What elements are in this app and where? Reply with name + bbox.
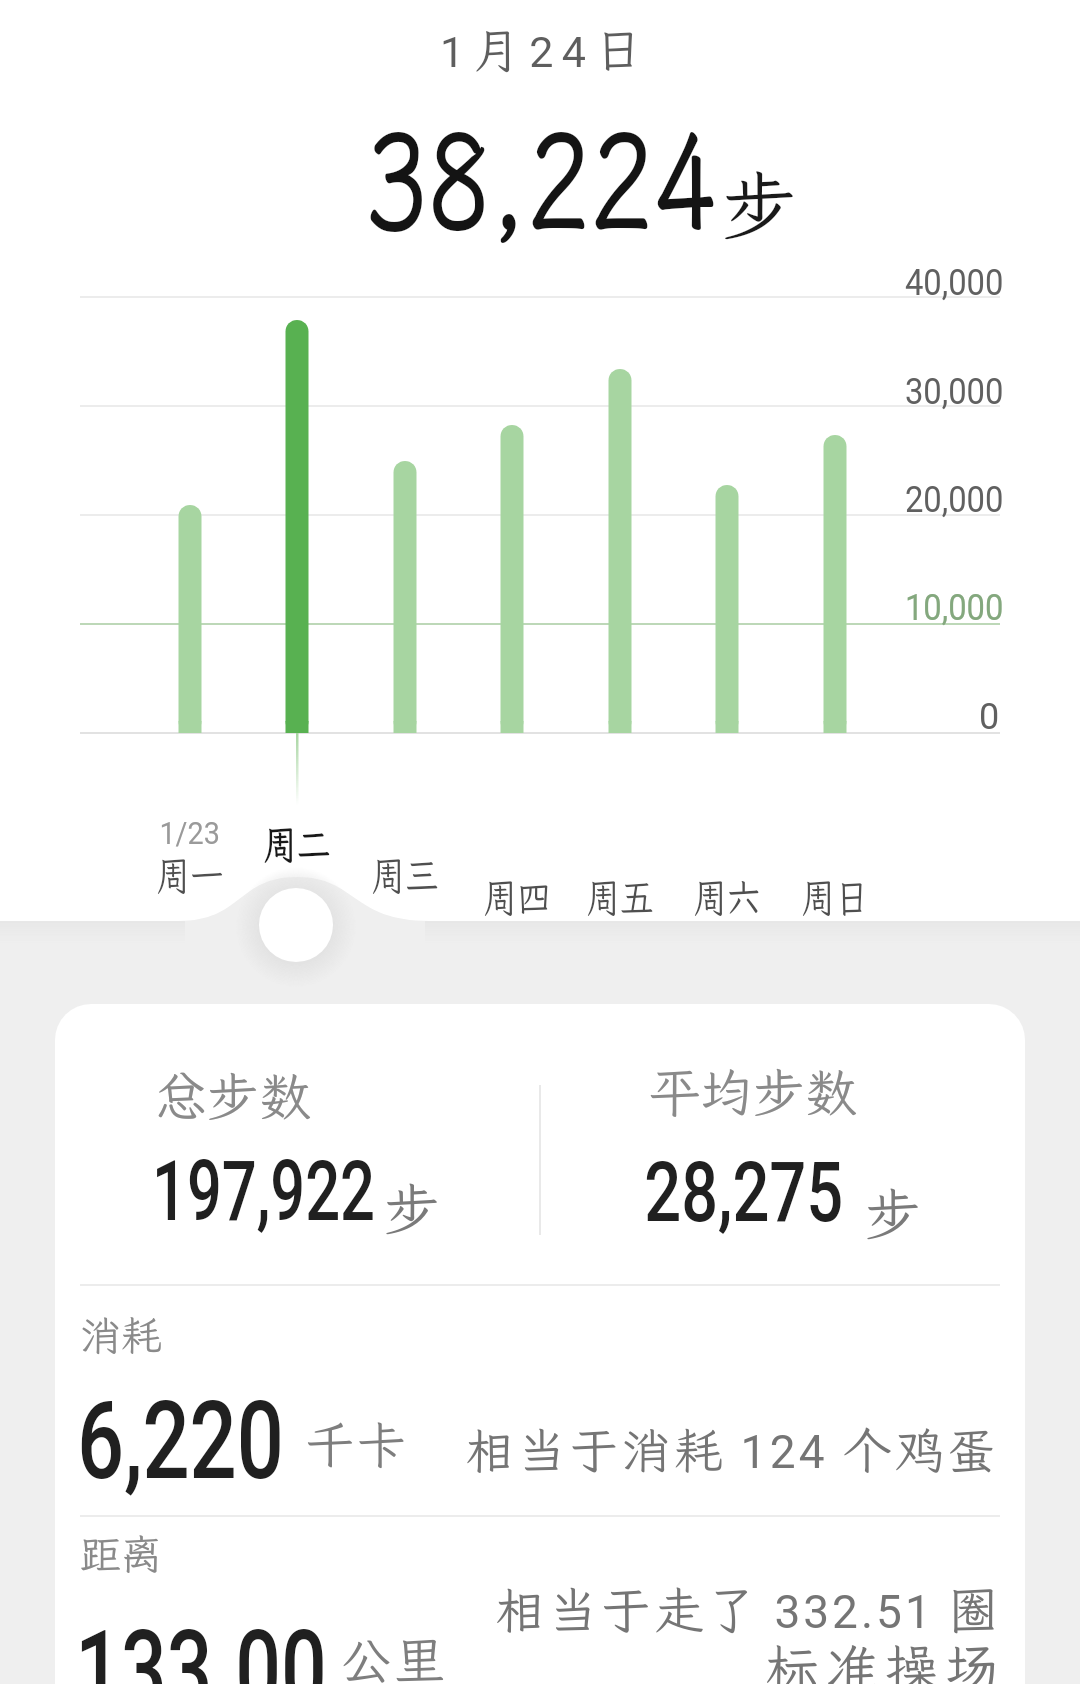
staticText: 38,224 xyxy=(365,90,716,266)
staticText: 相当于消耗 124 个鸡蛋 xyxy=(465,1417,999,1482)
staticText: 公里 xyxy=(340,1625,448,1684)
staticText: 步 xyxy=(384,1171,440,1245)
staticText: 133.00 xyxy=(75,1608,327,1684)
staticText: 10,000 xyxy=(905,587,1004,629)
staticText: 距离 xyxy=(80,1527,162,1581)
staticText: 20,000 xyxy=(905,479,1004,521)
button[interactable] xyxy=(136,297,243,917)
staticText: 周三 xyxy=(371,849,439,902)
staticText: 0 xyxy=(979,696,1000,738)
staticText: 1月24日 xyxy=(440,17,651,80)
button[interactable] xyxy=(671,297,778,917)
staticText: 千卡 xyxy=(305,1411,408,1477)
button[interactable] xyxy=(564,297,671,917)
staticText: 周二 xyxy=(263,818,331,871)
staticText: 平均步数 xyxy=(649,1057,858,1125)
button[interactable] xyxy=(243,297,350,917)
staticText: 周一 xyxy=(156,849,224,902)
staticText: 标准操场 xyxy=(765,1632,1005,1684)
button[interactable] xyxy=(80,1040,520,1240)
staticText: 6,220 xyxy=(77,1379,284,1504)
staticText: 1/23 xyxy=(159,814,221,852)
staticText: 周五 xyxy=(586,871,654,924)
staticText: 30,000 xyxy=(905,371,1004,413)
staticText: 总步数 xyxy=(155,1061,312,1129)
staticText: 28,275 xyxy=(644,1143,844,1241)
staticText: 相当于走了 332.51 圈 xyxy=(495,1576,1002,1642)
staticText: 消耗 xyxy=(80,1308,162,1362)
button[interactable] xyxy=(350,297,457,917)
staticText: 步 xyxy=(865,1176,921,1250)
staticText: 周六 xyxy=(693,871,761,924)
staticText: 40,000 xyxy=(905,262,1004,304)
staticText: 周四 xyxy=(483,871,551,924)
staticText: 197,922 xyxy=(152,1142,375,1240)
button[interactable] xyxy=(457,297,564,917)
button[interactable] xyxy=(560,1040,1000,1240)
staticText: 周日 xyxy=(801,871,869,924)
button[interactable] xyxy=(778,297,885,917)
staticText: 步 xyxy=(722,155,798,254)
